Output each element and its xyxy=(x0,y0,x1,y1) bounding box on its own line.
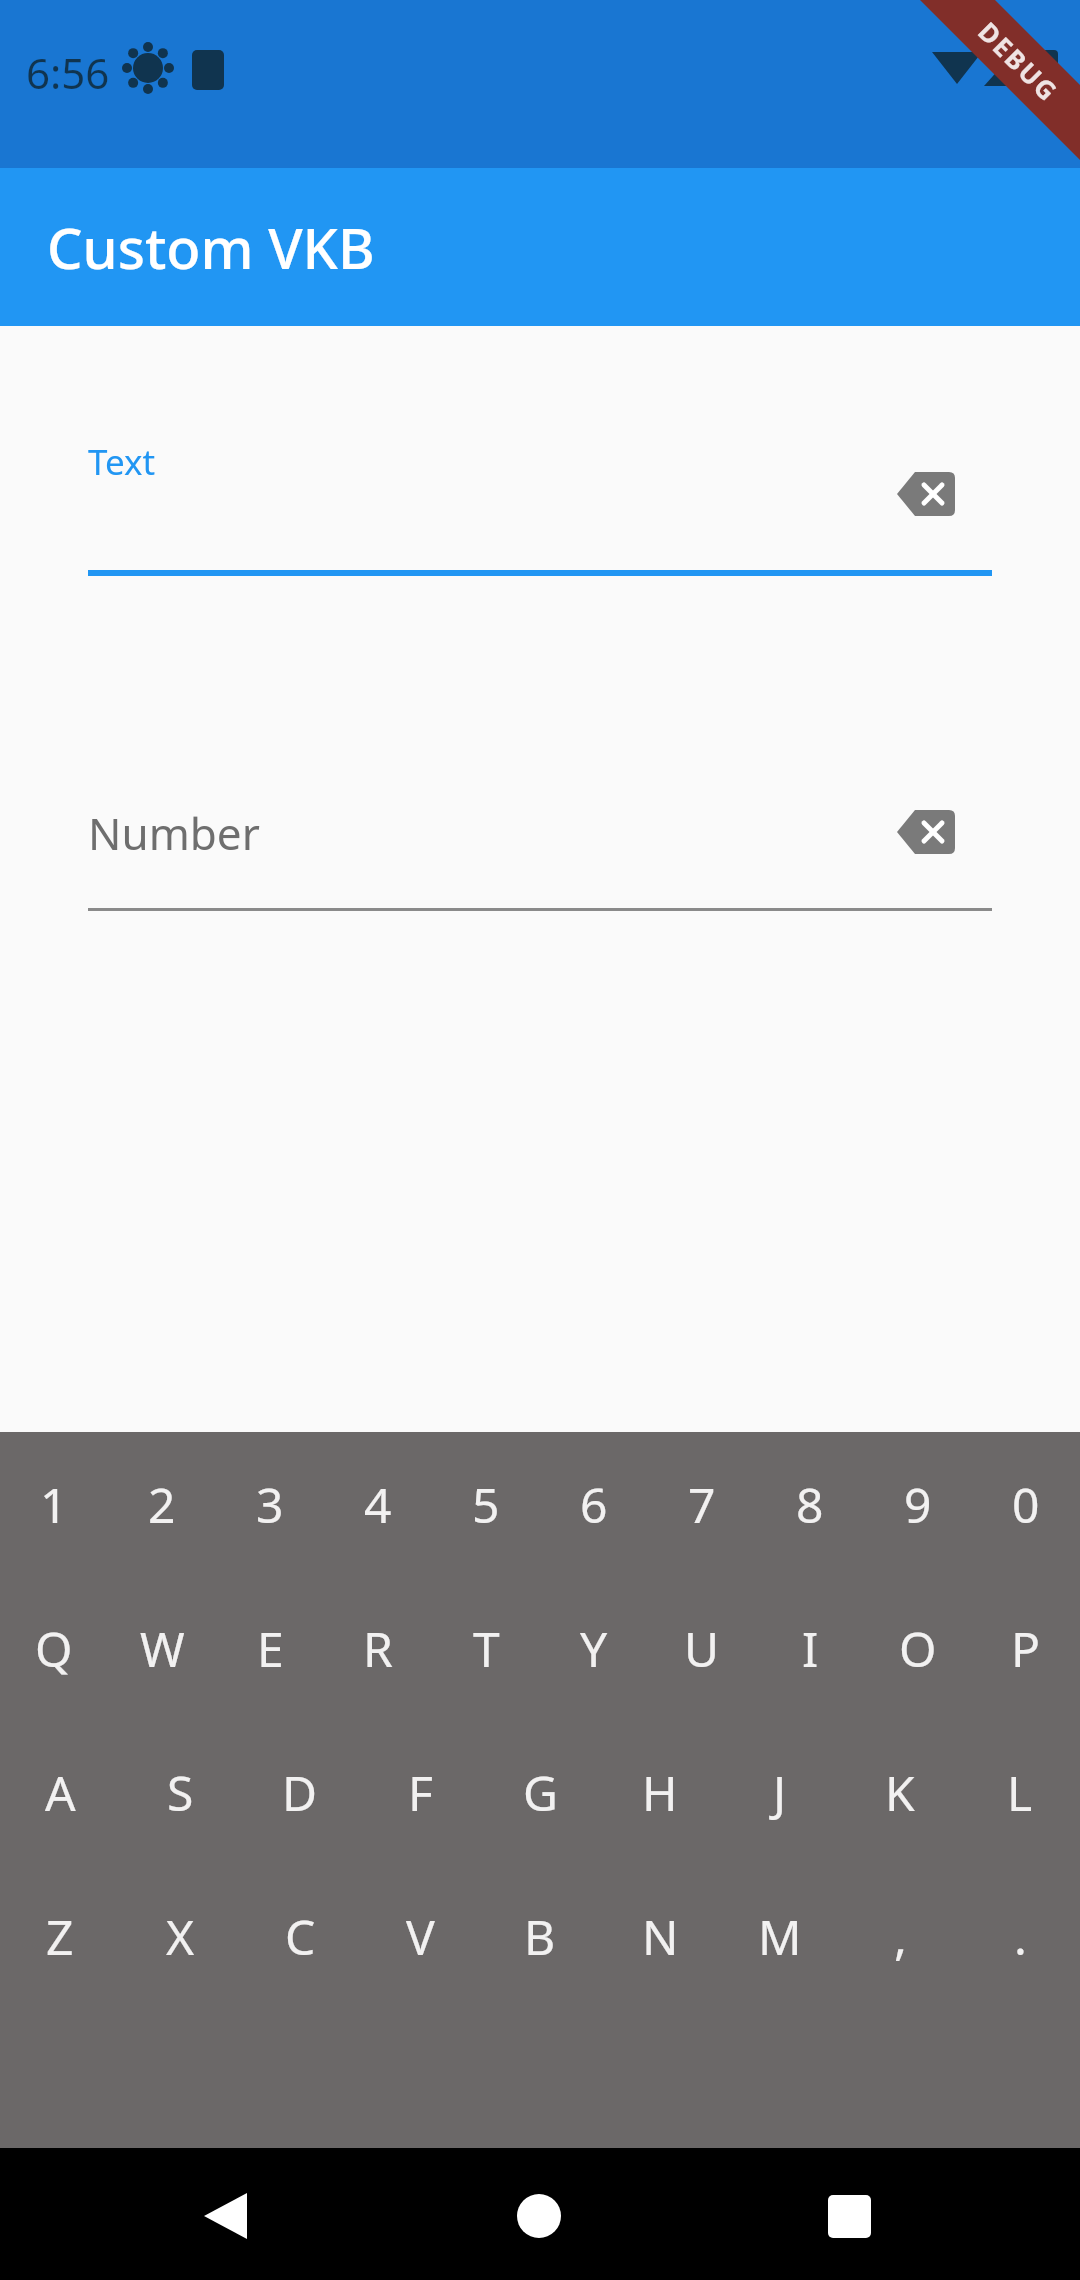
button[interactable] xyxy=(0,2148,360,2280)
button[interactable]: , xyxy=(840,1864,960,2008)
staticText: K xyxy=(885,1760,915,1825)
button[interactable]: 1 xyxy=(0,1432,108,1576)
button[interactable]: A xyxy=(0,1720,120,1864)
button[interactable]: D xyxy=(240,1720,360,1864)
button[interactable]: 7 xyxy=(648,1432,756,1576)
button[interactable]: T xyxy=(432,1576,540,1720)
button[interactable]: Y xyxy=(540,1576,648,1720)
staticText: M xyxy=(758,1904,802,1969)
staticText: O xyxy=(899,1616,937,1681)
button[interactable]: H xyxy=(600,1720,720,1864)
button[interactable]: 2 xyxy=(108,1432,216,1576)
button[interactable]: K xyxy=(840,1720,960,1864)
button[interactable]: 3 xyxy=(216,1432,324,1576)
staticText: 2 xyxy=(148,1472,176,1537)
button[interactable]: N xyxy=(600,1864,720,2008)
staticText: , xyxy=(894,1904,907,1969)
button[interactable]: P xyxy=(972,1576,1080,1720)
button[interactable]: B xyxy=(480,1864,600,2008)
staticText: T xyxy=(473,1616,500,1681)
staticText: 6:56 xyxy=(26,44,110,101)
button[interactable]: 6 xyxy=(540,1432,648,1576)
button[interactable]: 5 xyxy=(432,1432,540,1576)
button[interactable]: I xyxy=(756,1576,864,1720)
staticText: A xyxy=(45,1760,76,1825)
staticText: G xyxy=(523,1760,558,1825)
staticText: I xyxy=(802,1616,819,1681)
staticText: S xyxy=(167,1760,194,1825)
button[interactable]: V xyxy=(360,1864,480,2008)
staticText: D xyxy=(282,1760,318,1825)
staticText: 1 xyxy=(40,1472,68,1537)
button[interactable]: O xyxy=(864,1576,972,1720)
button[interactable]: U xyxy=(648,1576,756,1720)
button[interactable]: C xyxy=(240,1864,360,2008)
staticText: 6 xyxy=(580,1472,608,1537)
button[interactable]: 0 xyxy=(972,1432,1080,1576)
staticText: N xyxy=(642,1904,679,1969)
button[interactable]: . xyxy=(960,1864,1080,2008)
staticText: 8 xyxy=(796,1472,824,1537)
staticText: Text xyxy=(88,438,156,486)
staticText: C xyxy=(285,1904,316,1969)
button[interactable]: L xyxy=(960,1720,1080,1864)
staticText: 5 xyxy=(472,1472,500,1537)
staticText: R xyxy=(363,1616,393,1681)
staticText: DEBUG xyxy=(971,14,1067,109)
staticText: Q xyxy=(35,1616,73,1681)
staticText: V xyxy=(406,1904,435,1969)
button[interactable]: Z xyxy=(0,1864,120,2008)
staticText: H xyxy=(642,1760,678,1825)
staticText: W xyxy=(140,1616,185,1681)
staticText: 7 xyxy=(688,1472,716,1537)
staticText: X xyxy=(166,1904,195,1969)
staticText: Y xyxy=(580,1616,608,1681)
staticText: Z xyxy=(46,1904,74,1969)
staticText: Custom VKB xyxy=(47,209,375,285)
button[interactable]: M xyxy=(720,1864,840,2008)
button[interactable] xyxy=(897,468,957,520)
button[interactable]: 9 xyxy=(864,1432,972,1576)
staticText: 0 xyxy=(1012,1472,1040,1537)
staticText: 3 xyxy=(256,1472,284,1537)
button[interactable]: J xyxy=(720,1720,840,1864)
button[interactable]: F xyxy=(360,1720,480,1864)
button[interactable]: Q xyxy=(0,1576,108,1720)
button[interactable]: R xyxy=(324,1576,432,1720)
staticText: J xyxy=(773,1760,787,1825)
button[interactable]: 8 xyxy=(756,1432,864,1576)
staticText: E xyxy=(257,1616,284,1681)
button[interactable]: 4 xyxy=(324,1432,432,1576)
button[interactable]: X xyxy=(120,1864,240,2008)
staticText: P xyxy=(1011,1616,1041,1681)
staticText: Number xyxy=(88,803,260,863)
staticText: B xyxy=(524,1904,556,1969)
button[interactable] xyxy=(720,2148,1080,2280)
staticText: U xyxy=(684,1616,720,1681)
button[interactable] xyxy=(360,2148,720,2280)
staticText: . xyxy=(1014,1904,1027,1969)
staticText: 9 xyxy=(904,1472,932,1537)
button[interactable]: S xyxy=(120,1720,240,1864)
staticText: 4 xyxy=(364,1472,392,1537)
button[interactable]: E xyxy=(216,1576,324,1720)
button[interactable] xyxy=(897,806,957,858)
button[interactable]: W xyxy=(108,1576,216,1720)
staticText: F xyxy=(408,1760,433,1825)
button[interactable]: G xyxy=(480,1720,600,1864)
staticText: L xyxy=(1007,1760,1033,1825)
